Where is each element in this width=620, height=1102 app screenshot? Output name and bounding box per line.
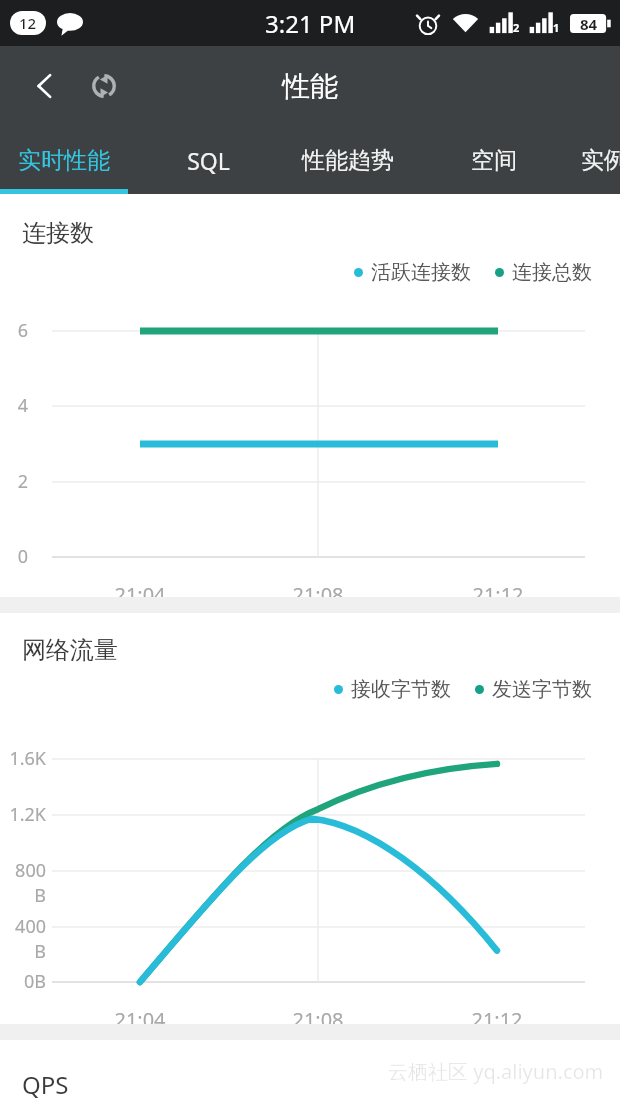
- button[interactable]: SQL: [163, 126, 253, 194]
- staticText: 21:08: [292, 1006, 344, 1033]
- staticText: 84: [580, 14, 598, 34]
- staticText: 6: [17, 318, 28, 343]
- staticText: 1: [553, 20, 560, 35]
- staticText: 21:08: [292, 581, 344, 608]
- staticText: 连接数: [22, 218, 94, 248]
- button[interactable]: 空间: [456, 126, 532, 194]
- staticText: 性能: [282, 69, 338, 104]
- button[interactable]: 实时性能: [8, 126, 120, 194]
- staticText: 2: [17, 469, 28, 494]
- staticText: 0B: [24, 969, 46, 994]
- staticText: QPS: [22, 1068, 69, 1101]
- staticText: 发送字节数: [492, 677, 592, 702]
- staticText: 连接总数: [512, 260, 592, 285]
- staticText: 接收字节数: [351, 677, 451, 702]
- staticText: 3:21 PM: [265, 7, 356, 40]
- staticText: 空间: [471, 146, 517, 175]
- staticText: 21:12: [472, 581, 524, 608]
- staticText: 800B: [6, 858, 46, 908]
- staticText: 云栖社区 yq.aliyun.com: [388, 1058, 604, 1085]
- button[interactable]: Refresh: [80, 62, 128, 110]
- button[interactable]: 性能趋势: [292, 126, 404, 194]
- staticText: 网络流量: [22, 635, 118, 665]
- staticText: 性能趋势: [302, 146, 394, 175]
- staticText: SQL: [187, 145, 230, 176]
- staticText: 活跃连接数: [371, 260, 471, 285]
- staticText: 12: [19, 13, 37, 33]
- staticText: 1.6K: [9, 746, 46, 771]
- staticText: 2: [513, 20, 520, 35]
- staticText: 实时性能: [18, 146, 110, 175]
- staticText: 21:04: [114, 1006, 166, 1033]
- button[interactable]: 实例: [566, 126, 620, 194]
- staticText: 400B: [6, 914, 46, 964]
- staticText: 21:04: [114, 581, 166, 608]
- staticText: 0: [17, 544, 28, 569]
- staticText: 1.2K: [9, 802, 46, 827]
- staticText: 21:12: [471, 1006, 523, 1033]
- staticText: 实例: [581, 146, 620, 175]
- staticText: 4: [17, 393, 28, 418]
- button[interactable]: Back: [22, 63, 68, 109]
